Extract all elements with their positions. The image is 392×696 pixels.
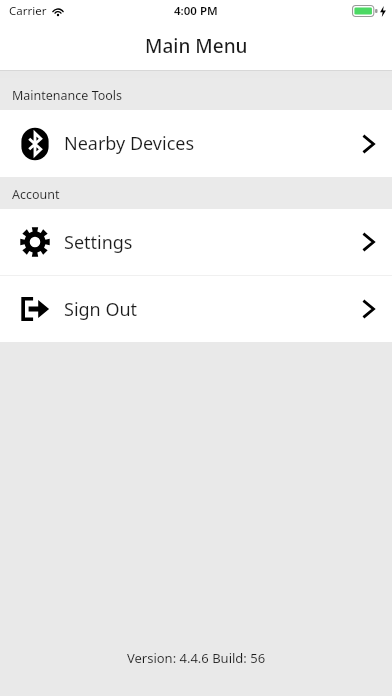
other: Settings <box>19 226 51 258</box>
other: Nearby Devices <box>18 127 52 161</box>
staticText: Account <box>12 186 60 203</box>
button[interactable]: Nearby Devices <box>0 110 392 177</box>
staticText: Carrier <box>9 3 47 19</box>
button[interactable]: Sign Out <box>0 276 392 342</box>
staticText: 4:00 PM <box>174 3 218 19</box>
staticText: Settings <box>64 230 133 255</box>
button[interactable]: Settings <box>0 209 392 275</box>
staticText: Sign Out <box>64 297 138 322</box>
staticText: Main Menu <box>145 33 248 59</box>
other: Sign Out <box>19 293 51 325</box>
staticText: Version: 4.4.6 Build: 56 <box>0 649 392 667</box>
staticText: Nearby Devices <box>64 131 195 156</box>
staticText: Maintenance Tools <box>12 87 123 104</box>
